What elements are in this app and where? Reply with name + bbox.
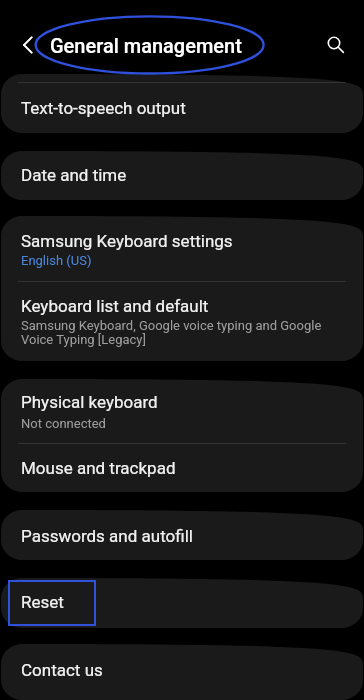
staticText: English (US)	[21, 253, 326, 268]
button[interactable]: Date and time	[1, 151, 363, 200]
button[interactable]: Search	[318, 27, 350, 59]
button[interactable]: Reset	[1, 578, 363, 628]
staticText: Mouse and trackpad	[21, 458, 176, 478]
staticText: Not connected	[21, 416, 326, 431]
staticText: General management	[50, 34, 242, 57]
button[interactable]: Physical keyboard	[1, 379, 363, 443]
staticText: Date and time	[21, 165, 127, 185]
button[interactable]: Contact us	[1, 644, 363, 700]
staticText: Samsung Keyboard settings	[21, 231, 233, 251]
button[interactable]: Keyboard list and default	[1, 282, 363, 361]
staticText: Contact us	[21, 660, 103, 680]
staticText: Reset	[21, 592, 64, 612]
staticText: Passwords and autofill	[21, 526, 193, 546]
staticText: Physical keyboard	[21, 392, 158, 412]
staticText: Keyboard list and default	[21, 296, 209, 316]
button[interactable]: Navigate up	[10, 30, 40, 60]
staticText: Text-to-speech output	[21, 98, 186, 118]
button[interactable]: Passwords and autofill	[1, 510, 363, 560]
staticText: Samsung Keyboard, Google voice typing an…	[21, 318, 326, 347]
button[interactable]: Mouse and trackpad	[1, 443, 363, 492]
button[interactable]: Text-to-speech output	[1, 84, 363, 133]
button[interactable]: Samsung Keyboard settings	[1, 216, 363, 282]
